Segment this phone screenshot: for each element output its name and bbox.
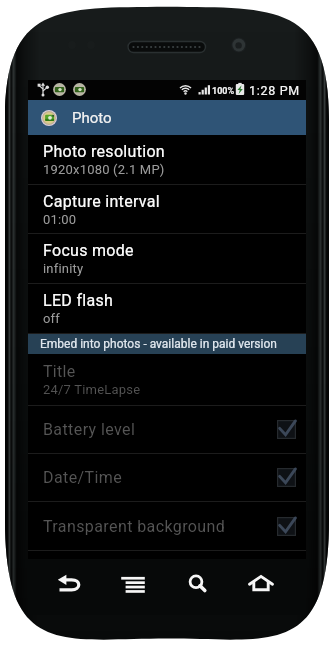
staticText: LED flash — [43, 291, 114, 310]
staticText: 1920x1080 (2.1 MP) — [43, 162, 165, 177]
staticText: Date/Time — [43, 468, 277, 487]
button[interactable]: Focus mode — [28, 234, 306, 284]
button[interactable]: Title — [28, 354, 306, 406]
staticText: Capture interval — [43, 192, 160, 211]
button[interactable]: Date/Time — [28, 454, 306, 502]
staticText: infinity — [43, 261, 84, 276]
button[interactable]: Menu — [116, 567, 150, 601]
button[interactable]: Capture interval — [28, 185, 306, 234]
staticText: 100% — [212, 86, 235, 97]
button[interactable]: Battery level — [28, 406, 306, 454]
button[interactable]: Back — [52, 567, 86, 601]
button[interactable]: Embed into photos - available in paid ve… — [28, 334, 306, 354]
button[interactable]: LED flash — [28, 284, 306, 334]
staticText: off — [43, 311, 61, 326]
staticText: Photo — [72, 109, 112, 127]
staticText: 24/7 TimeLapse — [43, 382, 141, 397]
button[interactable]: Transparent background — [28, 502, 306, 551]
staticText: 01:00 — [43, 212, 77, 227]
staticText: Focus mode — [43, 241, 134, 260]
button[interactable]: Photo — [28, 100, 306, 135]
button[interactable]: Photo resolution — [28, 135, 306, 185]
button[interactable]: Search — [181, 567, 215, 601]
staticText: Photo resolution — [43, 142, 165, 161]
staticText: Transparent background — [43, 517, 277, 536]
staticText: Embed into photos - available in paid ve… — [40, 337, 277, 351]
staticText: Battery level — [43, 420, 277, 439]
staticText: Title — [43, 362, 76, 381]
staticText: 1:28 PM — [249, 83, 300, 98]
button[interactable]: Home — [244, 567, 278, 601]
